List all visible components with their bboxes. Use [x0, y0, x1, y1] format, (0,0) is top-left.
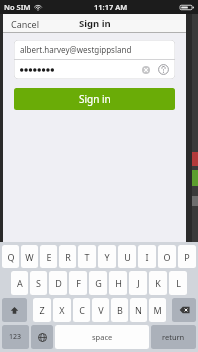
- button[interactable]: space: [55, 325, 149, 349]
- staticText: U: [124, 251, 131, 263]
- staticText: P: [184, 251, 190, 263]
- button[interactable]: C: [73, 298, 90, 322]
- staticText: I: [145, 251, 149, 263]
- staticText: Y: [104, 251, 110, 263]
- staticText: A: [17, 277, 23, 289]
- button[interactable]: J: [129, 271, 147, 295]
- staticText: E: [46, 251, 52, 263]
- staticText: F: [76, 277, 81, 289]
- button[interactable]: P: [178, 245, 196, 268]
- button[interactable]: K: [149, 271, 167, 295]
- staticText: S: [36, 277, 41, 289]
- staticText: return: [162, 332, 185, 342]
- staticText: Sign in: [79, 17, 111, 30]
- staticText: T: [84, 251, 90, 263]
- button[interactable]: return: [151, 325, 196, 349]
- staticText: V: [98, 304, 104, 316]
- staticText: D: [55, 277, 62, 289]
- button[interactable]: H: [109, 271, 127, 295]
- button[interactable]: W: [21, 245, 38, 268]
- button[interactable]: Shift: [2, 298, 27, 322]
- button[interactable]: Backspace: [172, 298, 196, 322]
- staticText: albert.harvey@westgippsland: [20, 44, 132, 55]
- button[interactable]: V: [92, 298, 109, 322]
- staticText: M: [153, 304, 162, 316]
- staticText: 11:17 AM: [94, 2, 128, 12]
- button[interactable]: Cancel: [3, 15, 48, 33]
- staticText: J: [137, 277, 140, 289]
- button[interactable]: 123: [2, 325, 29, 349]
- button[interactable]: Clear text: [140, 64, 151, 75]
- button[interactable]: R: [59, 245, 76, 268]
- staticText: O: [163, 251, 171, 263]
- button[interactable]: S: [30, 271, 47, 295]
- staticText: Sign in: [79, 92, 111, 106]
- button[interactable]: Y: [98, 245, 116, 268]
- staticText: No SIM: [4, 2, 31, 12]
- staticText: W: [25, 251, 34, 263]
- button[interactable]: Clear text: [14, 60, 175, 79]
- staticText: R: [65, 251, 71, 263]
- button[interactable]: L: [169, 271, 187, 295]
- button[interactable]: G: [89, 271, 107, 295]
- button[interactable]: I: [138, 245, 156, 268]
- button[interactable]: A: [11, 271, 28, 295]
- staticText: K: [155, 277, 161, 289]
- button[interactable]: F: [69, 271, 87, 295]
- button[interactable]: N: [130, 298, 147, 322]
- button[interactable]: Sign in: [14, 88, 175, 110]
- staticText: H: [115, 277, 122, 289]
- staticText: 123: [9, 332, 22, 342]
- button[interactable]: B: [111, 298, 128, 322]
- button[interactable]: T: [78, 245, 96, 268]
- button[interactable]: Q: [2, 245, 19, 268]
- staticText: B: [117, 304, 123, 316]
- staticText: Q: [7, 251, 15, 263]
- staticText: G: [95, 277, 102, 289]
- button[interactable]: Help: [157, 63, 170, 76]
- button[interactable]: M: [149, 298, 166, 322]
- staticText: X: [59, 304, 65, 316]
- button[interactable]: albert.harvey@westgippsland: [14, 40, 175, 59]
- staticText: N: [135, 304, 142, 316]
- button[interactable]: O: [158, 245, 176, 268]
- button[interactable]: E: [40, 245, 57, 268]
- button[interactable]: Z: [33, 298, 51, 322]
- staticText: Z: [39, 304, 45, 316]
- button[interactable]: X: [53, 298, 71, 322]
- staticText: C: [79, 304, 85, 316]
- staticText: L: [176, 277, 181, 289]
- button[interactable]: D: [49, 271, 67, 295]
- button[interactable]: U: [118, 245, 136, 268]
- button[interactable]: Change keyboard: [31, 325, 53, 349]
- staticText: space: [92, 332, 113, 342]
